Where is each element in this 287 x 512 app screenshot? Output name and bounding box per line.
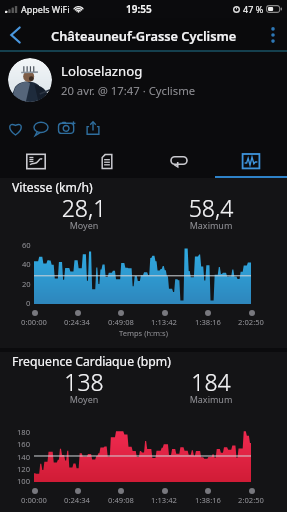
- staticText: 28,1: [46, 192, 122, 223]
- staticText: 58,4: [173, 192, 249, 223]
- staticText: Moyen: [46, 219, 122, 231]
- staticText: 2:02:50: [229, 317, 273, 327]
- staticText: Temps (h:m:s): [0, 328, 287, 338]
- staticText: 19:55: [126, 2, 152, 16]
- staticText: 0:00:00: [12, 495, 56, 505]
- button[interactable]: More options: [259, 18, 287, 52]
- staticText: Châteauneuf-Grasse Cyclisme: [51, 27, 237, 44]
- button[interactable]: Map: [0, 146, 71, 178]
- button[interactable]: Details: [71, 146, 143, 178]
- staticText: 120: [17, 464, 31, 474]
- staticText: 140: [17, 452, 31, 462]
- button[interactable]: Like: [2, 115, 28, 141]
- staticText: 40: [22, 259, 31, 269]
- staticText: 100: [17, 476, 31, 486]
- staticText: 2:02:50: [229, 495, 273, 505]
- staticText: 1:13:42: [142, 317, 186, 327]
- staticText: Maximum: [173, 219, 249, 231]
- staticText: Vitesse (km/h): [12, 179, 93, 196]
- staticText: 1:38:16: [186, 317, 230, 327]
- button[interactable]: Share: [80, 115, 106, 141]
- staticText: 0: [26, 298, 31, 308]
- staticText: Frequence Cardiaque (bpm): [12, 353, 171, 370]
- staticText: 20: [22, 279, 31, 289]
- button[interactable]: Charts: [215, 146, 287, 178]
- staticText: 20 avr. @ 17:47 · Cyclisme: [61, 83, 196, 98]
- staticText: 0:49:08: [99, 495, 143, 505]
- button[interactable]: Comment: [28, 115, 54, 141]
- button[interactable]: Photo: [54, 115, 80, 141]
- button[interactable]: Loloselaznog: [0, 52, 287, 108]
- staticText: 1:38:16: [186, 495, 230, 505]
- staticText: 0:24:34: [55, 317, 99, 327]
- staticText: Loloselaznog: [61, 62, 143, 80]
- staticText: Appels WiFi: [21, 3, 70, 15]
- staticText: 184: [173, 366, 249, 397]
- button[interactable]: Laps: [143, 146, 215, 178]
- staticText: 0:49:08: [99, 317, 143, 327]
- staticText: 0:24:34: [55, 495, 99, 505]
- staticText: 47 %: [243, 3, 264, 15]
- staticText: 60: [22, 240, 31, 250]
- staticText: 160: [17, 439, 31, 449]
- staticText: Maximum: [173, 393, 249, 405]
- staticText: Moyen: [46, 393, 122, 405]
- staticText: 180: [17, 427, 31, 437]
- staticText: 1:13:42: [142, 495, 186, 505]
- button[interactable]: Back: [0, 18, 32, 52]
- staticText: 0:00:00: [12, 317, 56, 327]
- staticText: 138: [46, 366, 122, 397]
